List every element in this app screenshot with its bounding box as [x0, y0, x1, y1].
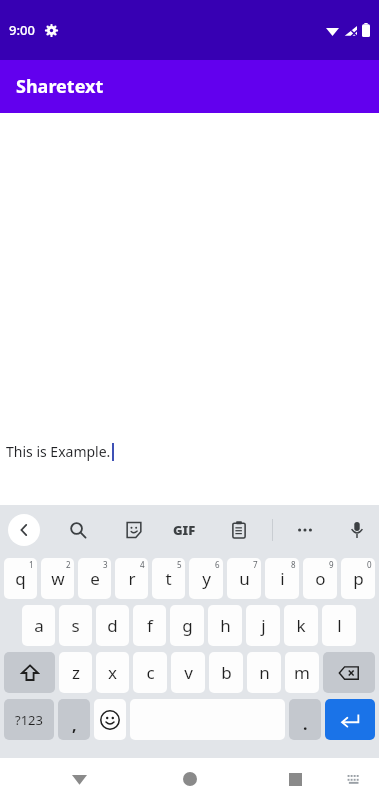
staticText: j [261, 614, 266, 637]
staticText: b [221, 661, 232, 684]
button[interactable]: More options [289, 514, 321, 546]
button[interactable]: v [171, 652, 205, 693]
button[interactable]: b [209, 652, 243, 693]
staticText: ?123 [15, 711, 43, 729]
button[interactable]: p [341, 558, 375, 599]
staticText: d [107, 614, 118, 637]
button[interactable]: Recents [278, 762, 312, 796]
staticText: y [202, 567, 211, 590]
staticText: n [259, 661, 270, 684]
staticText: w [51, 567, 65, 590]
staticText: s [71, 614, 80, 637]
button[interactable]: j [246, 605, 280, 646]
button[interactable]: g [170, 605, 204, 646]
staticText: o [315, 567, 326, 590]
button[interactable]: n [247, 652, 281, 693]
staticText: 9 [329, 559, 334, 570]
staticText: 3 [103, 559, 108, 570]
button[interactable]: y [189, 558, 223, 599]
staticText: 1 [29, 559, 34, 570]
button[interactable]: Shift [4, 652, 55, 693]
button[interactable]: d [96, 605, 129, 646]
staticText: , [72, 714, 77, 736]
staticText: e [90, 567, 100, 590]
button[interactable]: l [322, 605, 356, 646]
button[interactable]: Search [62, 514, 94, 546]
staticText: a [34, 614, 44, 637]
button[interactable]: h [208, 605, 242, 646]
staticText: z [72, 661, 80, 684]
staticText: 7 [253, 559, 258, 570]
button[interactable]: w [41, 558, 74, 599]
staticText: c [146, 661, 155, 684]
staticText: p [353, 567, 364, 590]
staticText: 4 [140, 559, 145, 570]
staticText: u [239, 567, 250, 590]
button[interactable]: a [22, 605, 55, 646]
button[interactable]: x [96, 652, 129, 693]
button[interactable]: Enter [325, 699, 375, 740]
button[interactable]: k [284, 605, 318, 646]
button[interactable]: Sharetext [0, 60, 379, 113]
staticText: v [184, 661, 193, 684]
button[interactable]: i [265, 558, 299, 599]
button[interactable]: c [133, 652, 167, 693]
button[interactable]: m [285, 652, 319, 693]
staticText: m [294, 661, 310, 684]
button[interactable]: e [78, 558, 111, 599]
button[interactable]: Stickers [118, 514, 150, 546]
staticText: r [128, 567, 136, 590]
button[interactable]: q [4, 558, 37, 599]
staticText: 0 [367, 559, 372, 570]
staticText: This is Example. [6, 442, 111, 461]
button[interactable]: u [227, 558, 261, 599]
staticText: 2 [66, 559, 71, 570]
staticText: t [165, 567, 172, 590]
staticText: i [280, 567, 285, 590]
staticText: f [147, 614, 153, 637]
button[interactable]: Back [8, 514, 40, 546]
button[interactable]: GIF [164, 510, 204, 550]
staticText: 6 [215, 559, 220, 570]
staticText: GIF [173, 521, 196, 539]
button[interactable]: Emoji [94, 699, 126, 740]
staticText: g [182, 614, 193, 637]
button[interactable]: Backspace [323, 652, 375, 693]
staticText: Sharetext [16, 74, 104, 99]
staticText: 8 [291, 559, 296, 570]
button[interactable]: o [303, 558, 337, 599]
staticText: q [15, 567, 26, 590]
staticText: h [220, 614, 231, 637]
button[interactable]: Home [173, 762, 207, 796]
button[interactable]: Voice input [341, 514, 373, 546]
button[interactable]: z [59, 652, 92, 693]
button[interactable]: . [289, 699, 321, 740]
staticText: l [337, 614, 342, 637]
staticText: . [303, 713, 308, 735]
button[interactable]: , [58, 699, 90, 740]
button[interactable]: r [115, 558, 148, 599]
button[interactable]: ?123 [4, 699, 54, 740]
button[interactable]: f [133, 605, 166, 646]
staticText: 9:00 [9, 21, 35, 39]
button[interactable]: s [59, 605, 92, 646]
staticText: k [296, 614, 306, 637]
button[interactable]: Switch keyboard [339, 764, 369, 794]
button[interactable]: Clipboard [223, 514, 255, 546]
button[interactable]: Back [62, 762, 96, 796]
staticText: 5 [177, 559, 182, 570]
staticText: x [108, 661, 117, 684]
button[interactable]: t [152, 558, 185, 599]
